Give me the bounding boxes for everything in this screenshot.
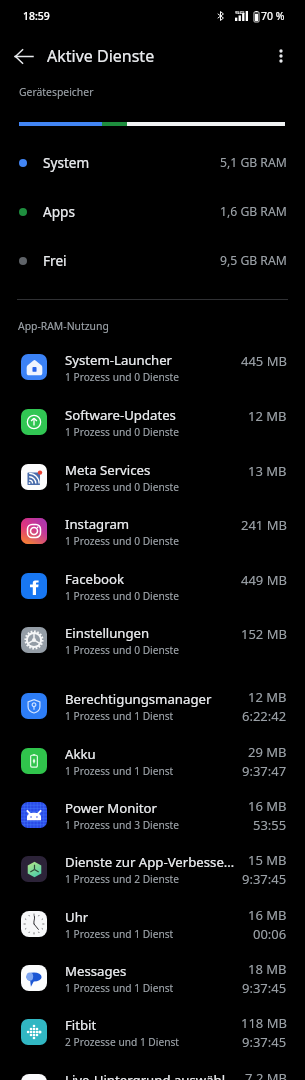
staticText: 2 Prozesse und 1 Dienst — [65, 1035, 180, 1049]
staticText: 1 Prozess und 1 Dienst — [65, 764, 174, 778]
staticText: 1 Prozess und 2 Dienste — [65, 872, 180, 886]
staticText: 16 MB — [248, 797, 287, 815]
staticText: Power Monitor — [65, 799, 158, 817]
staticText: Software-Updates — [65, 406, 176, 424]
staticText: 449 MB — [241, 571, 287, 589]
staticText: 1 Prozess und 0 Dienste — [65, 425, 180, 439]
staticText: Facebook — [65, 570, 125, 588]
staticText: 5,1 GB RAM — [220, 154, 287, 171]
staticText: Berechtigungsmanager — [65, 690, 212, 708]
button[interactable]: Zurück — [8, 40, 40, 72]
staticText: Apps — [43, 202, 75, 221]
button[interactable]: Uhr — [0, 897, 305, 951]
staticText: Aktive Dienste — [47, 45, 155, 67]
button[interactable]: Frei — [0, 236, 305, 285]
staticText: 9,5 GB RAM — [220, 252, 287, 269]
staticText: App-RAM-Nutzung — [18, 319, 109, 333]
staticText: 9:37:45 — [242, 870, 287, 888]
staticText: Fitbit — [65, 1016, 97, 1034]
button[interactable]: Einstellungen — [0, 613, 305, 667]
staticText: 1 Prozess und 3 Dienste — [65, 818, 180, 832]
staticText: 53:55 — [253, 816, 287, 834]
staticText: 13 MB — [248, 462, 287, 480]
staticText: 16 MB — [248, 906, 287, 924]
staticText: 9:37:45 — [242, 1033, 287, 1051]
staticText: 00:06 — [253, 925, 287, 943]
staticText: 9:37:47 — [242, 762, 287, 780]
button[interactable]: Meta Services — [0, 450, 305, 504]
button[interactable]: System — [0, 138, 305, 187]
button[interactable]: Berechtigungsmanager — [0, 679, 305, 733]
staticText: 18:59 — [23, 9, 50, 23]
button[interactable]: Software-Updates — [0, 395, 305, 449]
staticText: 7,2 MB — [245, 1069, 287, 1080]
staticText: Messages — [65, 962, 127, 980]
staticText: Akku — [65, 745, 96, 763]
staticText: Gerätespeicher — [19, 85, 94, 99]
staticText: 6:22:42 — [242, 707, 287, 725]
button[interactable]: Weitere Optionen — [267, 42, 295, 70]
staticText: Live-Hintergrund auswählen — [65, 1071, 239, 1080]
staticText: 15 MB — [248, 851, 287, 869]
staticText: 1 Prozess und 0 Dienste — [65, 589, 180, 603]
staticText: 12 MB — [248, 407, 287, 425]
staticText: Einstellungen — [65, 624, 150, 642]
staticText: 1 Prozess und 0 Dienste — [65, 643, 180, 657]
staticText: 70 % — [261, 9, 285, 23]
button[interactable]: Facebook — [0, 559, 305, 613]
staticText: 29 MB — [248, 743, 287, 761]
button[interactable]: System-Launcher — [0, 340, 305, 394]
staticText: 241 MB — [241, 516, 287, 534]
staticText: Meta Services — [65, 461, 151, 479]
staticText: 9:37:45 — [242, 979, 287, 997]
staticText: 1 Prozess und 1 Dienst — [65, 709, 174, 723]
staticText: System — [43, 153, 90, 172]
button[interactable]: Apps — [0, 187, 305, 236]
staticText: 1 Prozess und 0 Dienste — [65, 480, 180, 494]
staticText: System-Launcher — [65, 351, 173, 369]
staticText: Frei — [43, 251, 67, 270]
button[interactable]: Akku — [0, 734, 305, 788]
button[interactable]: Live-Hintergrund auswählen — [0, 1060, 305, 1080]
button[interactable]: Dienste zur App-Verbesserung — [0, 842, 305, 896]
staticText: 1 Prozess und 0 Dienste — [65, 534, 180, 548]
staticText: 445 MB — [241, 352, 287, 370]
button[interactable]: Instagram — [0, 504, 305, 558]
staticText: 1 Prozess und 0 Dienste — [65, 370, 180, 384]
staticText: 1,6 GB RAM — [220, 203, 287, 220]
staticText: 12 MB — [248, 688, 287, 706]
staticText: 1 Prozess und 1 Dienst — [65, 981, 174, 995]
staticText: 1 Prozess und 1 Dienst — [65, 927, 174, 941]
staticText: 152 MB — [241, 625, 287, 643]
staticText: 18 MB — [248, 960, 287, 978]
button[interactable]: Messages — [0, 951, 305, 1005]
staticText: Instagram — [65, 515, 130, 533]
button[interactable]: Power Monitor — [0, 788, 305, 842]
staticText: 118 MB — [241, 1014, 287, 1032]
staticText: Dienste zur App-Verbesserung — [65, 853, 239, 871]
staticText: Uhr — [65, 908, 89, 926]
button[interactable]: Fitbit — [0, 1005, 305, 1059]
